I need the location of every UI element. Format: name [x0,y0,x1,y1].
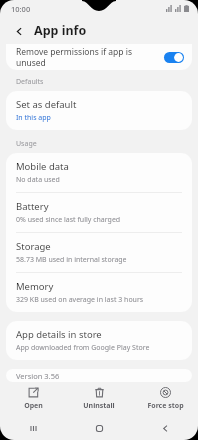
staticText: Defaults [16,77,44,87]
button[interactable]: Mobile data [6,153,192,192]
staticText: Battery [16,200,49,213]
staticText: Usage [16,139,37,149]
button[interactable]: Memory [6,273,192,312]
button[interactable]: Back [9,21,29,41]
staticText: Set as default [16,98,77,111]
button[interactable]: Open [0,382,66,416]
button[interactable]: Recents [0,416,66,440]
staticText: In this app [16,113,51,123]
button[interactable]: Back [132,416,198,440]
staticText: 58.73 MB used in internal storage [16,255,127,265]
button[interactable]: App details in store [6,321,192,360]
staticText: 10:00 [11,4,31,14]
staticText: 329 KB used on average in last 3 hours [16,295,144,305]
staticText: Uninstall [83,401,115,411]
staticText: Memory [16,280,54,293]
staticText: 0% used since last fully charged [16,215,121,225]
button[interactable]: Storage [6,233,192,272]
staticText: App info [34,22,87,39]
button[interactable]: Remove permissions if app is unused [6,44,192,70]
button[interactable]: Set as default [6,91,192,130]
staticText: Version 3.56 [16,371,60,381]
staticText: App downloaded from Google Play Store [16,343,150,353]
staticText: Storage [16,240,51,253]
staticText: App details in store [16,328,102,341]
button[interactable]: Force stop [132,382,198,416]
staticText: Mobile data [16,160,69,173]
button[interactable]: Uninstall [66,382,132,416]
staticText: Force stop [147,401,184,411]
staticText: No data used [16,175,60,185]
button[interactable]: Battery [6,193,192,232]
button[interactable]: Home [66,416,132,440]
staticText: Open [24,401,43,411]
staticText: Remove permissions if app is unused [16,46,158,68]
